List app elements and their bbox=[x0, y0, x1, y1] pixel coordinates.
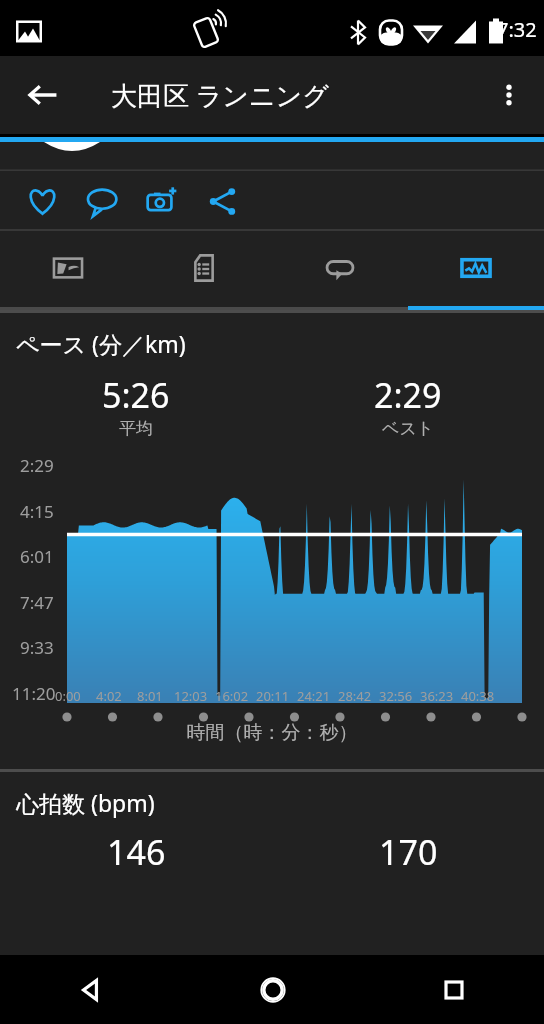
staticText: 7:47 bbox=[20, 591, 54, 614]
staticText: 36:23 bbox=[420, 687, 454, 705]
button[interactable]: Add photo bbox=[136, 173, 188, 229]
staticText: 2:29 bbox=[20, 454, 54, 477]
staticText: 32:56 bbox=[379, 687, 413, 705]
staticText: 9:33 bbox=[20, 636, 54, 659]
staticText: 24:21 bbox=[297, 687, 331, 705]
staticText: 16:02 bbox=[215, 687, 249, 705]
staticText: 平均 bbox=[119, 418, 153, 439]
staticText: 6:01 bbox=[20, 545, 54, 568]
staticText: 20:11 bbox=[256, 687, 290, 705]
button[interactable]: Recents bbox=[363, 955, 544, 1024]
staticText: 146 bbox=[107, 829, 166, 875]
staticText: 28:42 bbox=[338, 687, 372, 705]
staticText: 11:20 bbox=[12, 682, 56, 705]
button[interactable]: Back bbox=[18, 70, 68, 120]
button[interactable]: Back bbox=[0, 955, 182, 1024]
staticText: 4:15 bbox=[20, 500, 54, 523]
staticText: 大田区 ランニング bbox=[111, 77, 329, 113]
button[interactable]: Share bbox=[196, 173, 248, 229]
staticText: 時間（時：分：秒） bbox=[0, 721, 544, 745]
button[interactable]: Map bbox=[0, 231, 136, 310]
button[interactable]: Details bbox=[136, 231, 272, 310]
button[interactable]: Charts bbox=[408, 231, 544, 310]
staticText: ペース (分／km) bbox=[16, 328, 186, 359]
staticText: ベスト bbox=[382, 418, 435, 439]
button[interactable]: Home bbox=[182, 955, 363, 1024]
staticText: 心拍数 (bpm) bbox=[16, 787, 155, 818]
staticText: 40:38 bbox=[461, 687, 495, 705]
staticText: 2:29 bbox=[374, 372, 442, 418]
staticText: 4:02 bbox=[96, 687, 122, 705]
staticText: 7:32 bbox=[497, 16, 537, 43]
staticText: 12:03 bbox=[174, 687, 208, 705]
button[interactable]: Comment bbox=[76, 173, 128, 229]
button[interactable]: Laps bbox=[272, 231, 408, 310]
staticText: 0:00 bbox=[55, 687, 81, 705]
staticText: 170 bbox=[379, 829, 438, 875]
staticText: 5:26 bbox=[102, 372, 170, 418]
staticText: 8:01 bbox=[137, 687, 163, 705]
button[interactable]: More options bbox=[485, 71, 533, 119]
button[interactable]: Like bbox=[16, 173, 68, 229]
